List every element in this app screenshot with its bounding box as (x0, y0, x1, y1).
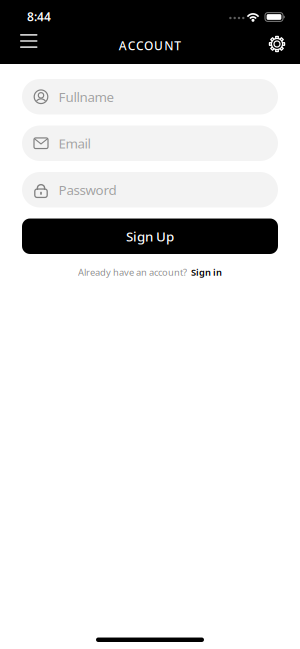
staticText: Already have an account? (78, 266, 187, 278)
staticText: Sign Up (126, 227, 174, 245)
button[interactable]: Menu (0, 34, 37, 54)
staticText: ACCOUNT (119, 37, 181, 53)
button[interactable]: Email (22, 125, 278, 161)
button[interactable]: Settings (268, 35, 300, 52)
staticText: Fullname (58, 88, 114, 106)
button[interactable]: Password (22, 172, 278, 207)
staticText: Email (58, 134, 90, 152)
button[interactable]: Sign Up (22, 218, 278, 254)
staticText: Sign in (191, 266, 222, 278)
button[interactable]: Fullname (22, 79, 278, 114)
staticText: 8:44 (27, 8, 51, 24)
button[interactable]: Sign in (191, 266, 222, 278)
staticText: Password (58, 181, 116, 199)
